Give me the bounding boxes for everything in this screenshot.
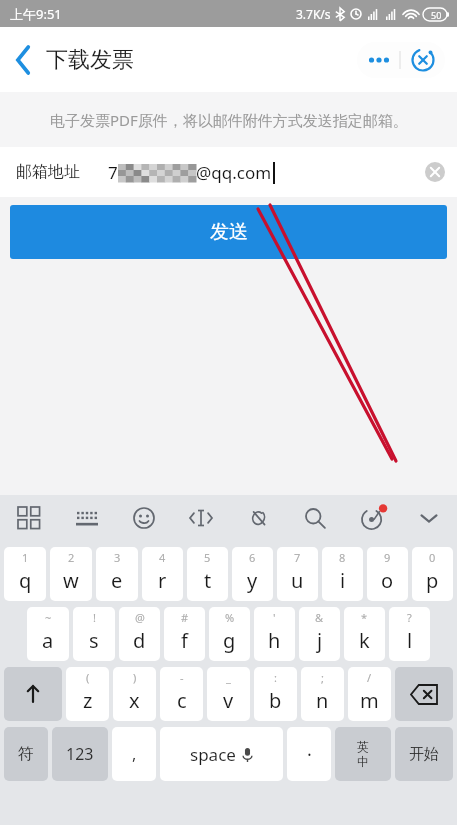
button[interactable]: ~: [27, 607, 69, 661]
staticText: h: [268, 627, 281, 654]
button[interactable]: %: [209, 607, 250, 661]
button[interactable]: _: [207, 667, 250, 721]
button[interactable]: 0: [412, 547, 453, 601]
button[interactable]: 更多: [357, 42, 400, 78]
staticText: t: [204, 567, 212, 594]
staticText: 下载发票: [46, 46, 134, 74]
staticText: m: [360, 687, 379, 714]
staticText: /: [367, 670, 372, 685]
staticText: 3: [114, 550, 121, 565]
button[interactable]: 开始: [395, 727, 453, 781]
button[interactable]: 8: [322, 547, 363, 601]
staticText: 9: [384, 550, 391, 565]
staticText: e: [111, 567, 123, 594]
staticText: 7: [108, 161, 118, 184]
staticText: 英: [357, 739, 369, 754]
button[interactable]: 6: [232, 547, 273, 601]
staticText: ): [133, 670, 137, 685]
staticText: z: [83, 687, 93, 714]
button[interactable]: 键盘: [67, 498, 107, 538]
staticText: ': [273, 610, 276, 625]
staticText: 1: [22, 550, 29, 565]
button[interactable]: 应用: [9, 498, 49, 538]
button[interactable]: 剪贴板: [238, 498, 278, 538]
button[interactable]: 语音: [352, 498, 392, 538]
staticText: !: [93, 610, 96, 625]
button[interactable]: 返回: [0, 35, 46, 85]
button[interactable]: !: [73, 607, 115, 661]
button[interactable]: 删除: [395, 667, 453, 721]
button[interactable]: 7: [277, 547, 318, 601]
button[interactable]: 英: [335, 727, 391, 781]
button[interactable]: /: [348, 667, 391, 721]
button[interactable]: 邮箱地址: [0, 147, 457, 197]
button[interactable]: 4: [142, 547, 183, 601]
staticText: 上午9:51: [10, 5, 62, 23]
staticText: 0: [429, 550, 436, 565]
staticText: @qq.com: [196, 161, 272, 184]
button[interactable]: 9: [367, 547, 408, 601]
staticText: 符: [18, 744, 34, 764]
button[interactable]: 关闭: [401, 42, 445, 78]
button[interactable]: 光标: [181, 498, 221, 538]
staticText: x: [129, 687, 140, 714]
button[interactable]: 5: [187, 547, 228, 601]
staticText: o: [381, 567, 394, 594]
button[interactable]: 搜索: [295, 498, 335, 538]
button[interactable]: 123: [52, 727, 108, 781]
button[interactable]: *: [344, 607, 385, 661]
button[interactable]: 收起键盘: [409, 498, 449, 538]
staticText: 4: [159, 550, 166, 565]
staticText: j: [317, 627, 323, 654]
staticText: i: [340, 567, 346, 594]
button[interactable]: -: [160, 667, 203, 721]
staticText: _: [226, 670, 231, 685]
staticText: y: [247, 567, 258, 594]
staticText: -: [180, 670, 184, 685]
button[interactable]: ): [113, 667, 156, 721]
button[interactable]: 清除: [413, 150, 457, 194]
staticText: u: [291, 567, 304, 594]
button[interactable]: ,: [112, 727, 156, 781]
button[interactable]: 3: [96, 547, 138, 601]
button[interactable]: &: [299, 607, 340, 661]
staticText: p: [426, 567, 439, 594]
staticText: r: [158, 567, 167, 594]
staticText: 3.7K/s: [296, 6, 331, 22]
button[interactable]: 发送: [10, 205, 447, 259]
staticText: @: [135, 610, 145, 625]
button[interactable]: :: [254, 667, 297, 721]
button[interactable]: (: [66, 667, 109, 721]
button[interactable]: ': [254, 607, 295, 661]
staticText: v: [223, 687, 234, 714]
staticText: ~: [45, 610, 52, 625]
staticText: g: [223, 627, 236, 654]
staticText: 开始: [409, 745, 439, 764]
staticText: *: [361, 610, 368, 625]
staticText: k: [359, 627, 370, 654]
button[interactable]: 1: [4, 547, 46, 601]
staticText: n: [316, 687, 329, 714]
button[interactable]: #: [164, 607, 205, 661]
staticText: ·: [307, 742, 312, 767]
button[interactable]: 表情: [124, 498, 164, 538]
staticText: #: [181, 610, 189, 625]
button[interactable]: ?: [389, 607, 430, 661]
button[interactable]: space: [160, 727, 283, 781]
button[interactable]: @: [119, 607, 160, 661]
button[interactable]: ·: [287, 727, 331, 781]
button[interactable]: 上档: [4, 667, 62, 721]
staticText: ;: [321, 670, 324, 685]
staticText: %: [225, 610, 235, 625]
staticText: 7: [294, 550, 301, 565]
staticText: 中: [357, 754, 369, 769]
button[interactable]: ;: [301, 667, 344, 721]
staticText: f: [181, 627, 188, 654]
button[interactable]: 2: [50, 547, 92, 601]
staticText: q: [19, 567, 32, 594]
button[interactable]: 符: [4, 727, 48, 781]
staticText: (: [86, 670, 90, 685]
staticText: 5: [204, 550, 211, 565]
staticText: 50: [431, 9, 442, 21]
staticText: c: [177, 687, 187, 714]
